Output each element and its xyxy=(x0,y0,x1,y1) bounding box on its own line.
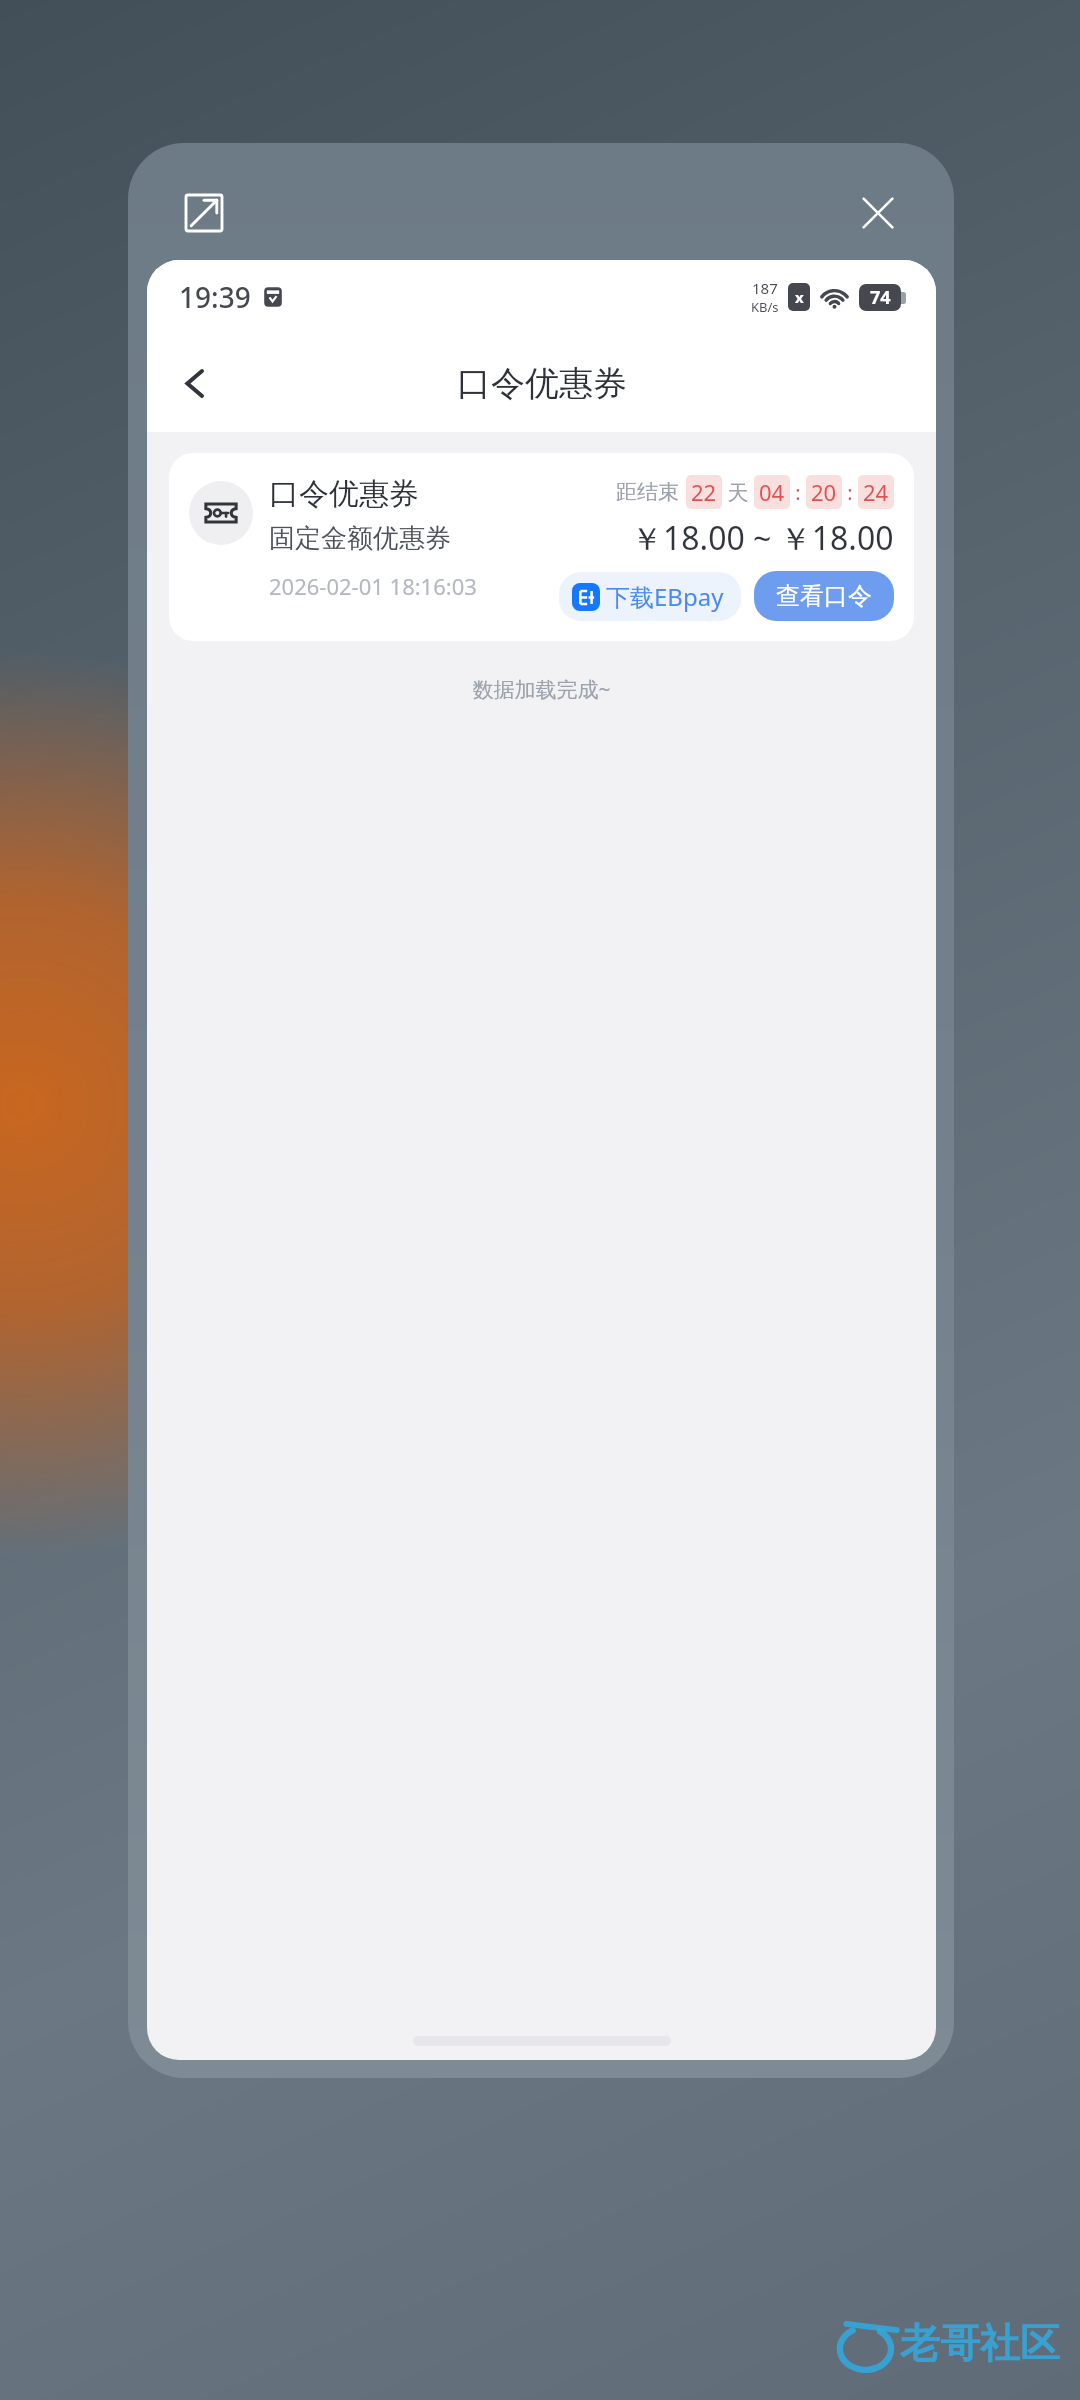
staticText: 19:39 xyxy=(179,278,251,316)
staticText: 查看口令 xyxy=(776,581,872,611)
button[interactable]: 口令优惠券 xyxy=(169,453,914,641)
staticText: 2026-02-01 18:16:03 xyxy=(269,571,477,601)
staticText: 22 xyxy=(691,477,717,507)
staticText: 下载EBpay xyxy=(606,580,724,613)
button[interactable]: Back xyxy=(163,351,227,415)
staticText: KB/s xyxy=(751,298,779,316)
button[interactable]: Expand window xyxy=(170,179,238,247)
staticText: 距结束 xyxy=(616,479,679,505)
staticText: 天 xyxy=(722,478,754,507)
staticText: 187 xyxy=(752,278,778,298)
staticText: 20 xyxy=(811,477,837,507)
staticText: 老哥社区 xyxy=(900,2318,1060,2368)
staticText: 数据加载完成~ xyxy=(147,675,936,704)
staticText: 口令优惠券 xyxy=(269,475,419,513)
staticText: x xyxy=(795,287,804,307)
staticText: 口令优惠券 xyxy=(457,362,627,405)
staticText: 24 xyxy=(863,477,889,507)
button[interactable]: 下载EBpay xyxy=(559,572,741,621)
staticText: 固定金额优惠券 xyxy=(269,522,451,555)
staticText: : xyxy=(790,479,806,506)
staticText: ￥18.00 ~ ￥18.00 xyxy=(631,516,894,560)
button[interactable]: 查看口令 xyxy=(754,571,894,621)
staticText: 74 xyxy=(870,285,891,310)
button[interactable]: Close xyxy=(844,179,912,247)
staticText: 04 xyxy=(759,477,785,507)
staticText: : xyxy=(842,479,858,506)
